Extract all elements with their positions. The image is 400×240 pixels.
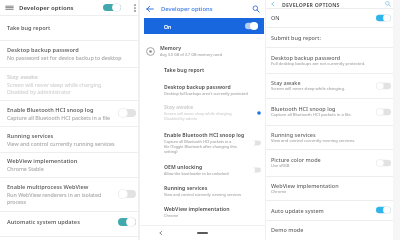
- button[interactable]: Switch on: [376, 206, 391, 214]
- button[interactable]: Switch off: [376, 108, 391, 116]
- staticText: Screen will never sleep while charging: [164, 111, 232, 116]
- staticText: Run WebView renderers in an isolated: [7, 191, 102, 198]
- staticText: Demo mode: [271, 226, 304, 233]
- staticText: Picture color mode: [271, 156, 321, 163]
- button[interactable]: ON: [266, 8, 393, 27]
- button[interactable]: Back: [146, 5, 154, 13]
- staticText: process: [7, 198, 27, 205]
- button[interactable]: Menu: [5, 3, 14, 12]
- button[interactable]: Enable multiprocess WebView: [0, 177, 138, 211]
- staticText: Automatic system updates: [7, 218, 80, 226]
- button[interactable]: Switch off: [376, 159, 391, 167]
- staticText: No password set for device backup to des…: [7, 54, 122, 61]
- button[interactable]: Automatic system updates: [0, 211, 138, 232]
- button[interactable]: Take bug report: [0, 15, 138, 40]
- staticText: Bluetooth HCI snoop log: [271, 105, 336, 112]
- button[interactable]: Switch off: [249, 140, 261, 146]
- button[interactable]: Running services: [266, 125, 393, 149]
- button[interactable]: Stay awake: [266, 73, 393, 98]
- staticText: View and control currently running servi…: [164, 192, 242, 197]
- button[interactable]: Enable Bluetooth HCI snoop log: [0, 100, 138, 126]
- staticText: Running services: [7, 132, 54, 140]
- staticText: Stay awake: [7, 73, 38, 81]
- staticText: OEM unlocking: [164, 164, 203, 171]
- staticText: Capture all Bluetooth HCI packets in a: [164, 139, 232, 144]
- staticText: Enable Bluetooth HCI snoop log: [7, 106, 94, 114]
- staticText: Stay awake: [164, 104, 193, 111]
- staticText: Full desktop backups are not currently p…: [271, 61, 366, 67]
- button[interactable]: Stay awake: [0, 67, 138, 100]
- staticText: WebView implementation: [271, 182, 339, 189]
- staticText: Running services: [271, 131, 316, 138]
- staticText: file (Toggle Bluetooth after changing th…: [164, 144, 237, 149]
- staticText: Running services: [164, 185, 208, 192]
- staticText: Enable multiprocess WebView: [7, 183, 89, 191]
- staticText: Capture all Bluetooth HCI packets in a f…: [271, 112, 352, 118]
- staticText: Chrome: [271, 189, 287, 195]
- staticText: WebView implementation: [164, 206, 230, 213]
- button[interactable]: Bluetooth HCI snoop log: [266, 98, 393, 125]
- staticText: Capture all Bluetooth HCI packets in a f…: [7, 114, 111, 121]
- staticText: Memory: [160, 45, 182, 52]
- button[interactable]: Stay awake: [140, 100, 265, 125]
- button[interactable]: Desktop backup password: [0, 40, 138, 67]
- button[interactable]: Back: [158, 230, 164, 236]
- button[interactable]: Submit bug report:: [266, 27, 393, 47]
- staticText: Developer options: [161, 5, 252, 13]
- button[interactable]: Picture color mode: [266, 149, 393, 176]
- staticText: Use sRGB: [271, 163, 290, 169]
- button[interactable]: Running services: [0, 126, 138, 152]
- button[interactable]: Search: [252, 5, 260, 13]
- staticText: Desktop full backups aren't currently pr…: [164, 91, 248, 96]
- button[interactable]: Home: [197, 232, 208, 234]
- button[interactable]: WebView implementation: [0, 152, 138, 177]
- button[interactable]: More options: [134, 4, 136, 12]
- staticText: DEVELOPER OPTIONS: [282, 1, 385, 8]
- staticText: Submit bug report:: [271, 34, 321, 41]
- button[interactable]: WebView implementation: [140, 201, 265, 223]
- button[interactable]: Take bug report: [140, 61, 265, 79]
- button[interactable]: Memory: [140, 41, 265, 61]
- button[interactable]: Search: [385, 1, 391, 7]
- button[interactable]: On: [144, 18, 264, 34]
- staticText: Developer options: [19, 4, 103, 12]
- button[interactable]: Desktop backup password: [266, 47, 393, 73]
- staticText: On: [164, 23, 245, 30]
- staticText: Disabled by admin: [164, 116, 198, 121]
- button[interactable]: Switch on: [245, 22, 258, 30]
- staticText: Stay awake: [271, 79, 301, 86]
- button[interactable]: Switch on: [376, 14, 391, 22]
- button[interactable]: Auto update system: [266, 200, 393, 220]
- staticText: Screen will never sleep while charging: [7, 81, 102, 88]
- button[interactable]: Back: [270, 1, 276, 7]
- button[interactable]: Switch on: [103, 3, 121, 12]
- staticText: Allow the bootloader to be unlocked: [164, 171, 229, 176]
- staticText: Desktop backup password: [164, 84, 231, 91]
- staticText: WebView implementation: [7, 157, 78, 165]
- staticText: setting): [164, 149, 178, 154]
- button[interactable]: Switch off: [118, 189, 136, 199]
- staticText: Take bug report: [7, 24, 51, 32]
- button[interactable]: Enable Bluetooth HCI snoop log: [140, 125, 265, 160]
- staticText: Desktop backup password: [7, 46, 79, 54]
- button[interactable]: Switch off: [249, 167, 261, 173]
- button[interactable]: Demo mode: [266, 220, 393, 239]
- staticText: Enable Bluetooth HCI snoop log: [164, 132, 245, 139]
- button[interactable]: Switch off: [376, 82, 391, 90]
- staticText: Take bug report: [164, 67, 205, 74]
- staticText: Avg 3.0 GB of 3.7 GB memory used: [160, 52, 223, 57]
- staticText: Screen will never sleep while charging.: [271, 86, 345, 92]
- staticText: Chrome: [164, 213, 179, 218]
- button[interactable]: WebView implementation: [266, 176, 393, 200]
- button[interactable]: Switch on: [118, 217, 136, 227]
- button[interactable]: Switch off: [118, 108, 136, 118]
- button[interactable]: Desktop backup password: [140, 79, 265, 100]
- button[interactable]: OEM unlocking: [140, 160, 265, 180]
- staticText: Disabled by administrator: [7, 88, 72, 95]
- staticText: View and control currently running servi…: [271, 138, 356, 144]
- staticText: Desktop backup password: [271, 54, 341, 61]
- staticText: View and control currently running servi…: [7, 140, 115, 147]
- button[interactable]: Running services: [140, 180, 265, 201]
- staticText: Chrome Stable: [7, 165, 44, 172]
- staticText: Auto update system: [271, 207, 324, 214]
